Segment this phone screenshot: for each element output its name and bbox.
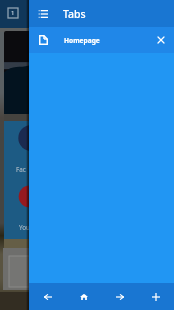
button[interactable]: Forward [102, 283, 138, 310]
button[interactable]: Close tab [148, 27, 174, 53]
button[interactable]: Back [29, 283, 66, 310]
staticText: Tabs [63, 7, 86, 21]
button[interactable]: Open tabs: 1 [8, 8, 18, 18]
button[interactable]: Homepage [29, 27, 174, 53]
staticText: Fac [16, 165, 26, 174]
staticText: 1 [11, 9, 15, 17]
button[interactable]: New tab [138, 283, 174, 310]
staticText: You [19, 223, 30, 232]
button[interactable]: Home [66, 283, 102, 310]
staticText: Homepage [64, 36, 100, 45]
button[interactable]: Menu [29, 0, 57, 27]
